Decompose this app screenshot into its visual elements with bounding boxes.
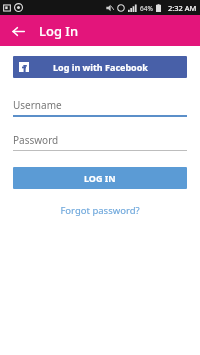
staticText: Forgot password? xyxy=(60,204,140,217)
button[interactable]: Forgot password? xyxy=(52,201,148,220)
staticText: 2:32 AM xyxy=(168,3,197,13)
staticText: Password xyxy=(13,133,59,147)
button[interactable]: Password xyxy=(13,133,187,151)
staticText: Username xyxy=(13,98,62,112)
staticText: Log in with Facebook xyxy=(53,61,148,73)
button[interactable]: Back xyxy=(8,21,28,41)
button[interactable]: Username xyxy=(13,98,187,117)
staticText: Log In xyxy=(39,22,79,40)
staticText: LOG IN xyxy=(84,172,116,184)
button[interactable]: Log in with Facebook xyxy=(13,56,187,78)
button[interactable]: LOG IN xyxy=(13,167,187,189)
staticText: 64% xyxy=(140,4,153,13)
